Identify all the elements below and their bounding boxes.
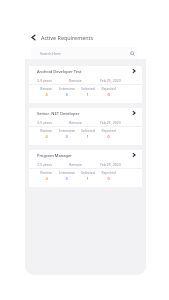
staticText: 0 xyxy=(107,134,110,139)
button[interactable]: Android Developer Test xyxy=(29,66,142,103)
staticText: 1 xyxy=(86,176,89,181)
staticText: Interview xyxy=(59,86,75,91)
staticText: Review xyxy=(40,128,52,133)
staticText: Rejected xyxy=(101,170,116,175)
staticText: Selected xyxy=(81,128,95,133)
staticText: 3-5 years xyxy=(37,78,52,83)
staticText: Review xyxy=(40,86,52,91)
button[interactable]: Back xyxy=(28,32,39,43)
staticText: Active Requirements xyxy=(41,34,94,41)
staticText: 4 xyxy=(45,176,48,181)
staticText: 3 xyxy=(65,176,68,181)
staticText: 1 xyxy=(86,92,89,97)
staticText: 3 xyxy=(65,92,68,97)
staticText: Remote xyxy=(69,162,82,167)
staticText: Feb 25, 2023 xyxy=(100,78,121,83)
staticText: Interview xyxy=(59,170,75,175)
button[interactable]: Program Manager xyxy=(29,150,142,187)
staticText: Remote xyxy=(69,78,82,83)
staticText: Program Manager xyxy=(37,153,72,158)
staticText: Feb 25, 2023 xyxy=(100,162,121,167)
staticText: Senior .NET Developer xyxy=(37,111,80,116)
staticText: Remote xyxy=(69,120,82,125)
staticText: 1 xyxy=(86,134,89,139)
staticText: 3-5 years xyxy=(37,162,52,167)
staticText: Rejected xyxy=(101,86,116,91)
staticText: 0 xyxy=(107,92,110,97)
button[interactable]: Search Here xyxy=(31,47,137,59)
staticText: Selected xyxy=(81,86,95,91)
staticText: 3 xyxy=(65,134,68,139)
staticText: Selected xyxy=(81,170,95,175)
button[interactable]: Senior .NET Developer xyxy=(29,108,142,145)
staticText: Rejected xyxy=(101,128,116,133)
staticText: Search Here xyxy=(40,51,61,56)
staticText: 4 xyxy=(45,134,48,139)
staticText: 3-5 years xyxy=(37,120,52,125)
staticText: 0 xyxy=(107,176,110,181)
staticText: Android Developer Test xyxy=(37,69,82,74)
staticText: Feb 25, 2023 xyxy=(100,120,121,125)
staticText: Interview xyxy=(59,128,75,133)
staticText: 4 xyxy=(45,92,48,97)
staticText: Review xyxy=(40,170,52,175)
